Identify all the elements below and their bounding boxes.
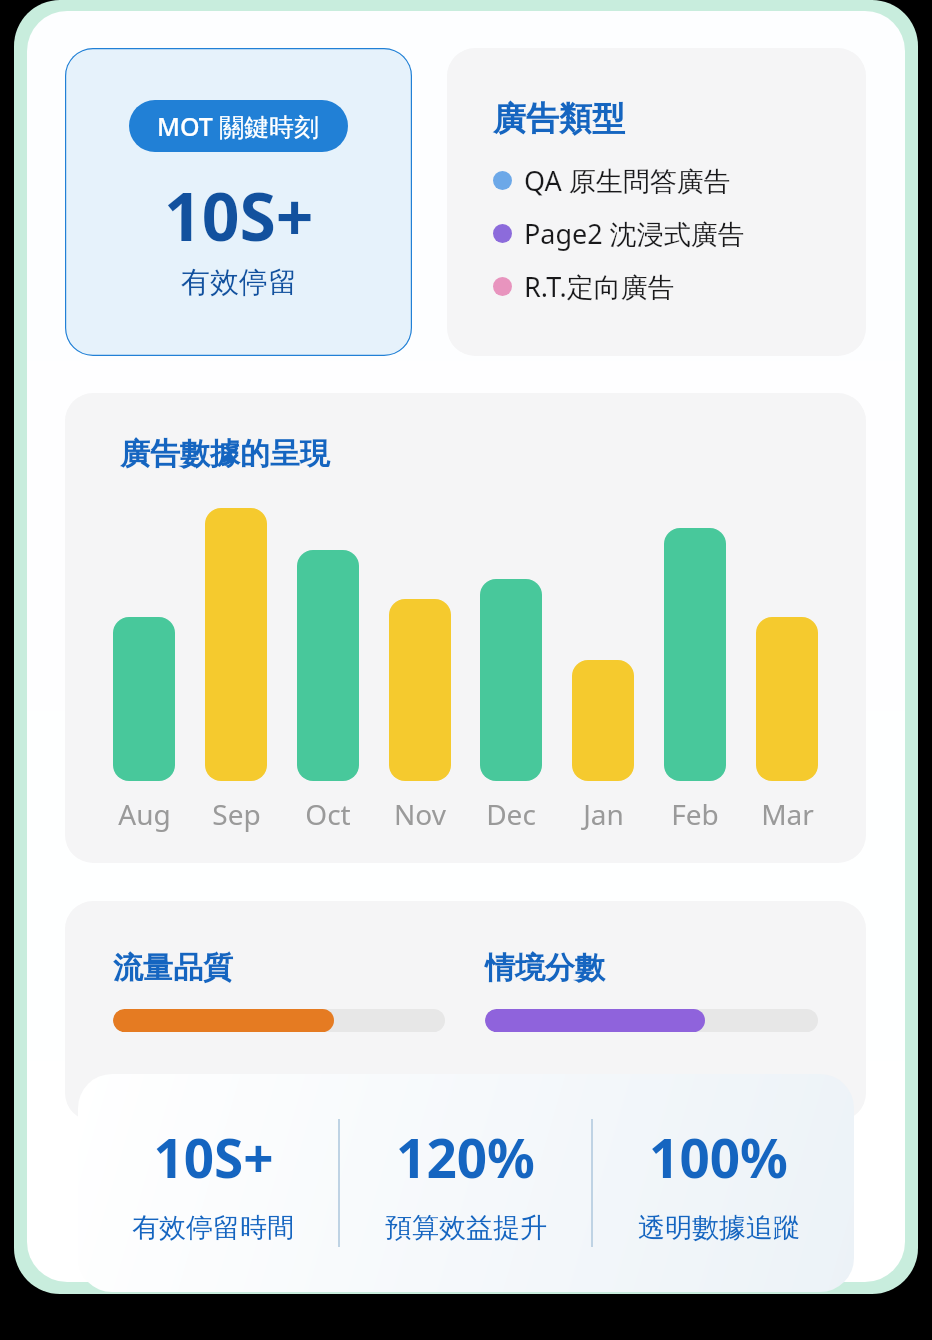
staticText: 10S+ xyxy=(153,1121,274,1193)
staticText: R.T.定向廣告 xyxy=(524,268,675,305)
staticText: 預算效益提升 xyxy=(385,1211,547,1245)
button[interactable]: 廣告數據的呈現 xyxy=(65,393,866,863)
button[interactable]: Mar xyxy=(756,617,818,781)
staticText: 120% xyxy=(396,1121,535,1193)
staticText: 100% xyxy=(649,1121,788,1193)
button[interactable]: Feb xyxy=(664,528,726,781)
button[interactable]: Page2 沈浸式廣告 xyxy=(493,215,745,252)
staticText: 透明數據追蹤 xyxy=(638,1211,800,1245)
button[interactable]: Sep xyxy=(205,508,267,781)
button[interactable]: 情境分數 xyxy=(485,949,818,1032)
staticText: Page2 沈浸式廣告 xyxy=(524,215,745,252)
button[interactable]: MOT 關鍵時刻 xyxy=(129,100,348,152)
button[interactable]: Aug xyxy=(113,617,175,781)
staticText: Oct xyxy=(305,795,351,833)
button[interactable]: 100% xyxy=(593,1121,844,1245)
staticText: 有效停留時間 xyxy=(132,1211,294,1245)
button[interactable]: 10S+ xyxy=(88,1121,338,1245)
staticText: 廣告數據的呈現 xyxy=(120,435,330,473)
button[interactable]: 120% xyxy=(340,1121,591,1245)
button[interactable]: 流量品質 xyxy=(113,949,445,1032)
staticText: QA 原生問答廣告 xyxy=(524,162,731,199)
button[interactable]: QA 原生問答廣告 xyxy=(493,162,731,199)
staticText: Aug xyxy=(118,795,171,833)
button[interactable]: 10S+ xyxy=(78,1074,854,1292)
button[interactable]: Oct xyxy=(297,550,359,781)
staticText: Dec xyxy=(486,795,536,833)
staticText: MOT 關鍵時刻 xyxy=(157,109,320,143)
button[interactable]: 廣告類型 xyxy=(447,48,866,356)
button[interactable]: Jan xyxy=(572,660,634,781)
staticText: Mar xyxy=(761,795,814,833)
staticText: 情境分數 xyxy=(485,949,605,987)
staticText: 10S+ xyxy=(164,170,314,260)
staticText: 廣告類型 xyxy=(493,98,625,140)
staticText: 有效停留 xyxy=(181,264,297,301)
staticText: Feb xyxy=(671,795,719,833)
button[interactable]: R.T.定向廣告 xyxy=(493,268,675,305)
staticText: Jan xyxy=(583,795,624,833)
button[interactable]: Dec xyxy=(480,579,542,781)
button[interactable]: 流量品質 xyxy=(65,901,866,1121)
button[interactable]: MOT 關鍵時刻 xyxy=(65,48,412,356)
staticText: Sep xyxy=(212,795,261,833)
button[interactable]: Nov xyxy=(389,599,451,781)
staticText: Nov xyxy=(394,795,446,833)
staticText: 流量品質 xyxy=(113,949,233,987)
